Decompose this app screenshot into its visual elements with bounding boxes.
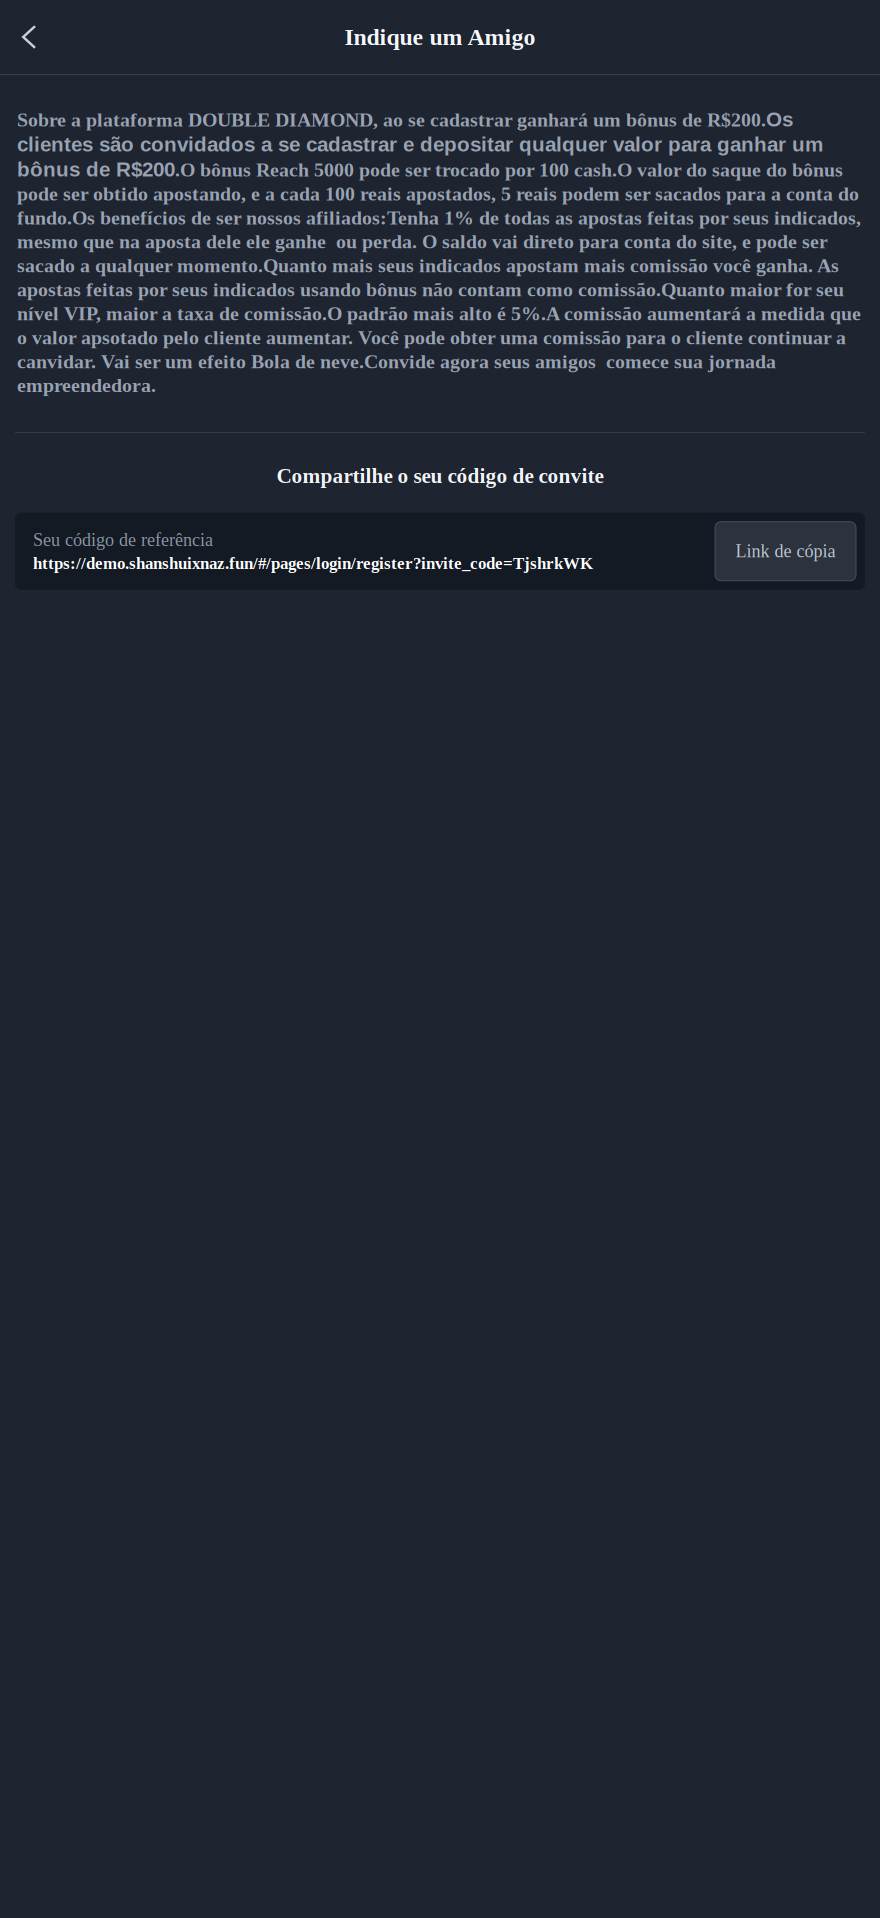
staticText: Compartilhe o seu código de convite [276, 464, 603, 488]
staticText: Link de cópia [735, 541, 835, 561]
button[interactable]: Back [0, 0, 58, 74]
staticText: Seu código de referência [33, 530, 213, 550]
button[interactable]: Link de cópia [715, 522, 856, 581]
staticText: https://demo.shanshuixnaz.fun/#/pages/lo… [33, 554, 593, 573]
staticText: Indique um Amigo [344, 24, 535, 50]
staticText: Sobre a plataforma DOUBLE DIAMOND, ao se… [17, 108, 861, 396]
